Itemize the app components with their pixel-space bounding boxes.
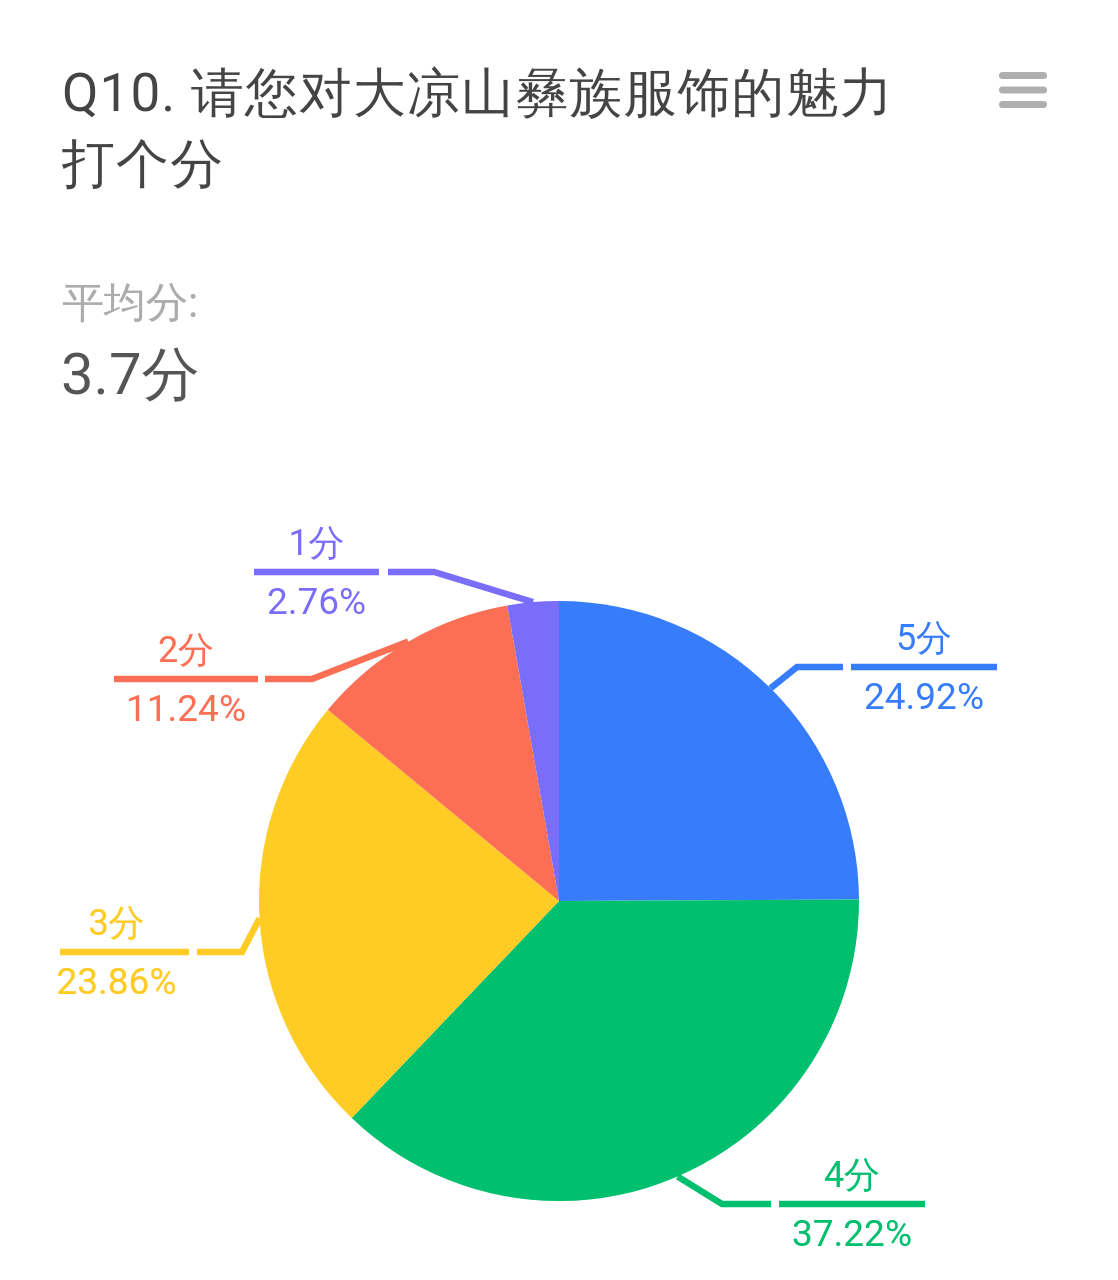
staticText: 3分 [52, 900, 181, 945]
staticText: 37.22% [779, 1212, 925, 1255]
staticText: 1分 [254, 520, 379, 565]
staticText: 24.92% [851, 675, 997, 718]
staticText: 2分 [114, 627, 258, 672]
staticText: 11.24% [114, 687, 258, 730]
staticText: 4分 [779, 1152, 925, 1197]
staticText: 平均分: [62, 277, 199, 330]
staticText: 3.7分 [61, 338, 200, 411]
staticText: 5分 [851, 615, 997, 660]
staticText: 2.76% [254, 580, 379, 623]
staticText: 23.86% [52, 960, 181, 1003]
staticText: Q10. 请您对大凉山彝族服饰的魅力 打个分 [62, 60, 962, 198]
button[interactable]: Menu [980, 55, 1066, 125]
